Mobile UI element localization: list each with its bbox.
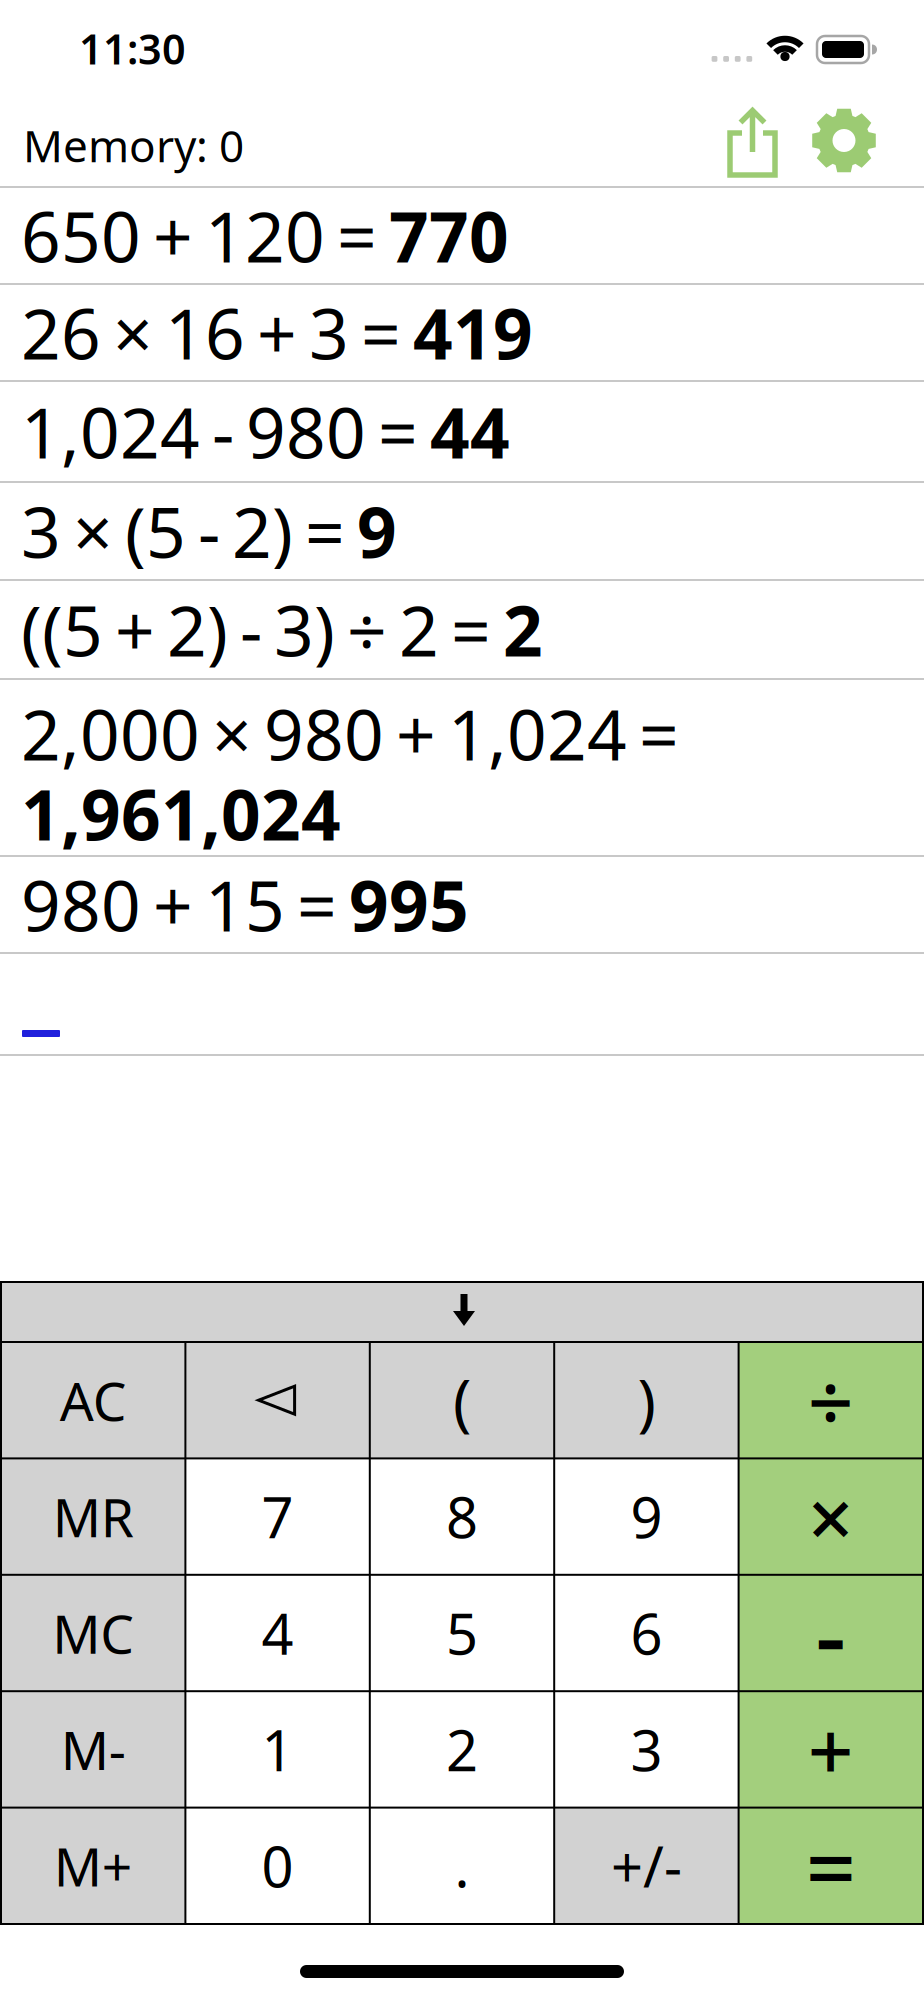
staticText: 5	[446, 1596, 478, 1670]
button[interactable]: 2,000 × 980 + 1,024 =	[0, 680, 924, 855]
staticText: 2,000 × 980 + 1,024 =	[21, 687, 679, 780]
staticText: AC	[60, 1365, 127, 1436]
staticText: )	[637, 1359, 655, 1441]
button[interactable]: M-	[2, 1692, 184, 1807]
staticText: 3	[630, 1712, 662, 1787]
button[interactable]: 9	[555, 1459, 738, 1574]
staticText: 3 × (5 - 2) =	[21, 485, 357, 577]
button[interactable]: AC	[2, 1343, 184, 1457]
staticText: 9	[630, 1479, 662, 1554]
staticText: 7	[262, 1479, 294, 1554]
button[interactable]: Backspace	[186, 1343, 369, 1457]
button[interactable]: ((5 + 2) - 3) ÷ 2 =	[0, 581, 924, 678]
staticText: 650 + 120 =	[21, 189, 389, 282]
staticText: -	[815, 1569, 846, 1697]
staticText: 980 + 15 =	[21, 858, 349, 951]
staticText: 8	[446, 1479, 478, 1554]
staticText: 6	[630, 1596, 662, 1670]
staticText: 26 × 16 + 3 =	[21, 286, 413, 379]
staticText: 1,024 - 980 =	[21, 385, 430, 478]
button[interactable]: )	[555, 1343, 738, 1457]
staticText: +	[808, 1696, 854, 1802]
button[interactable]: 4	[186, 1576, 369, 1690]
button[interactable]: 7	[186, 1459, 369, 1574]
staticText: ÷	[808, 1347, 854, 1453]
staticText: 2	[446, 1712, 478, 1787]
staticText: Memory: 0	[23, 116, 244, 174]
staticText: 9	[357, 485, 397, 577]
staticText: 995	[349, 858, 469, 951]
button[interactable]: =	[740, 1809, 922, 1923]
button[interactable]: Dismiss keypad	[2, 1283, 922, 1341]
button[interactable]: 1,024 - 980 =	[0, 382, 924, 481]
button[interactable]: ÷	[740, 1343, 922, 1457]
staticText: 2	[503, 583, 543, 676]
staticText: ×	[808, 1463, 854, 1570]
staticText: 419	[413, 286, 533, 379]
staticText: M+	[54, 1830, 133, 1901]
button[interactable]: -	[740, 1576, 922, 1690]
button[interactable]: (	[371, 1343, 553, 1457]
button[interactable]: 5	[371, 1576, 553, 1690]
staticText: MR	[53, 1481, 134, 1552]
staticText: 770	[389, 189, 509, 282]
button[interactable]: 980 + 15 =	[0, 857, 924, 952]
button[interactable]: 0	[186, 1809, 369, 1923]
button[interactable]: 3	[555, 1692, 738, 1807]
staticText: (	[453, 1359, 471, 1441]
button[interactable]: 2	[371, 1692, 553, 1807]
button[interactable]: Share	[730, 108, 775, 175]
button[interactable]: +/-	[555, 1809, 738, 1923]
staticText: +/-	[611, 1829, 682, 1903]
staticText: 1,961,024	[21, 767, 341, 860]
staticText: MC	[52, 1598, 134, 1668]
button[interactable]: 6	[555, 1576, 738, 1690]
staticText: 44	[430, 385, 510, 478]
button[interactable]: +	[740, 1692, 922, 1807]
staticText: 0	[262, 1829, 294, 1903]
staticText: M-	[61, 1714, 126, 1785]
button[interactable]: MC	[2, 1576, 184, 1690]
staticText: 4	[262, 1596, 294, 1670]
staticText: 1	[262, 1712, 294, 1787]
button[interactable]: 3 × (5 - 2) =	[0, 483, 924, 579]
staticText: 11:30	[79, 21, 186, 76]
staticText: .	[454, 1829, 469, 1903]
button[interactable]: ×	[740, 1459, 922, 1574]
button[interactable]: 650 + 120 =	[0, 188, 924, 283]
button[interactable]: 26 × 16 + 3 =	[0, 285, 924, 380]
staticText: ((5 + 2) - 3) ÷ 2 =	[21, 583, 503, 676]
button[interactable]: Settings	[811, 108, 876, 173]
button[interactable]: 8	[371, 1459, 553, 1574]
button[interactable]: .	[371, 1809, 553, 1923]
staticText: =	[806, 1807, 856, 1924]
button[interactable]: 1	[186, 1692, 369, 1807]
button[interactable]: M+	[2, 1809, 184, 1923]
button[interactable]: MR	[2, 1459, 184, 1574]
